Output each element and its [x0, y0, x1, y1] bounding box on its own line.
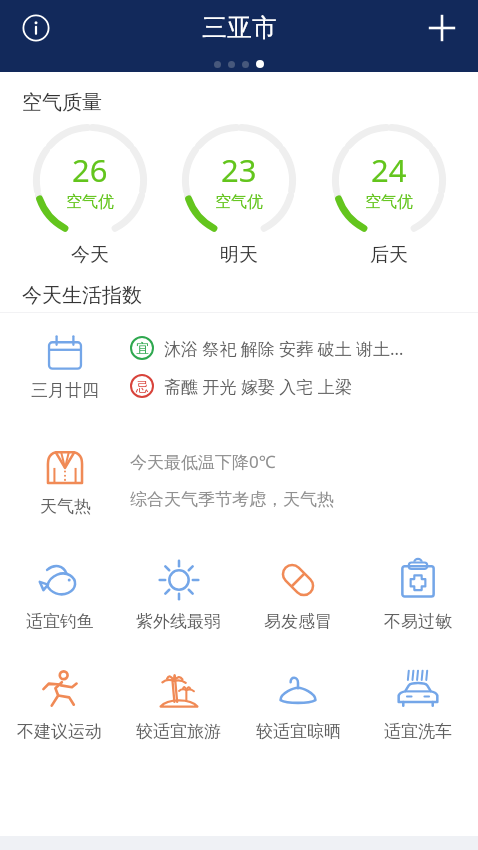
staticText: 23 [221, 149, 257, 191]
staticText: 三亚市 [202, 12, 277, 43]
staticText: 较适宜晾晒 [256, 721, 341, 742]
staticText: 斋醮 开光 嫁娶 入宅 上梁 [164, 375, 352, 398]
button[interactable]: 天气热 [0, 421, 478, 539]
staticText: 易发感冒 [264, 611, 332, 632]
button[interactable]: 较适宜晾晒 [238, 649, 358, 759]
staticText: 较适宜旅游 [136, 721, 221, 742]
staticText: 空气优 [215, 192, 263, 212]
button[interactable]: 24 [329, 121, 449, 241]
staticText: 沐浴 祭祀 解除 安葬 破土 谢土… [164, 337, 404, 360]
button[interactable]: 适宜洗车 [358, 649, 478, 759]
button[interactable]: 不易过敏 [358, 539, 478, 649]
button[interactable]: 紫外线最弱 [119, 539, 238, 649]
staticText: 不易过敏 [384, 611, 452, 632]
staticText: 适宜洗车 [384, 721, 452, 742]
staticText: 今天生活指数 [22, 283, 142, 308]
staticText: 后天 [370, 243, 408, 267]
button[interactable]: 不建议运动 [0, 649, 119, 759]
staticText: 综合天气季节考虑，天气热 [130, 489, 334, 510]
staticText: 今天最低温下降0℃ [130, 450, 276, 473]
button[interactable]: 23 [179, 121, 299, 241]
button[interactable]: 三月廿四 [0, 313, 478, 421]
staticText: 宜 [136, 340, 149, 356]
staticText: 空气优 [66, 192, 114, 212]
button[interactable]: 易发感冒 [238, 539, 358, 649]
button[interactable]: 26 [30, 121, 150, 241]
staticText: 26 [72, 149, 108, 191]
staticText: 天气热 [40, 496, 91, 517]
staticText: 明天 [220, 243, 258, 267]
button[interactable]: Info [8, 0, 64, 56]
button[interactable]: 适宜钓鱼 [0, 539, 119, 649]
staticText: 三月廿四 [31, 380, 99, 401]
staticText: 适宜钓鱼 [26, 611, 94, 632]
staticText: 忌 [136, 378, 149, 394]
staticText: 空气优 [365, 192, 413, 212]
staticText: 空气质量 [22, 90, 102, 115]
staticText: 紫外线最弱 [136, 611, 221, 632]
button[interactable]: Add city [414, 0, 470, 56]
staticText: 不建议运动 [17, 721, 102, 742]
staticText: 24 [371, 149, 407, 191]
staticText: 今天 [71, 243, 109, 267]
button[interactable]: 较适宜旅游 [119, 649, 238, 759]
